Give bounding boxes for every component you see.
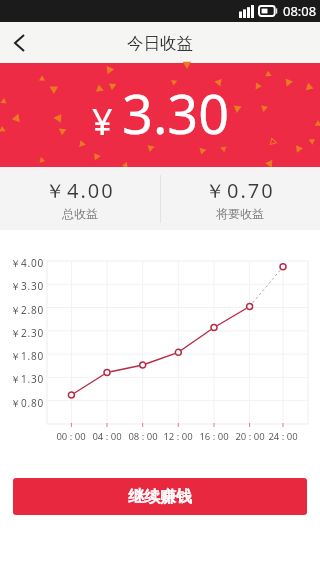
staticText: ￥0.70 xyxy=(205,177,275,204)
staticText: 总收益 xyxy=(62,206,98,221)
staticText: 24 : 00 xyxy=(263,430,303,443)
staticText: ¥ xyxy=(92,97,113,146)
button[interactable]: Back xyxy=(0,22,41,63)
staticText: 今日收益 xyxy=(127,33,193,54)
staticText: ￥4.00 xyxy=(3,256,44,270)
staticText: ￥1.30 xyxy=(3,372,44,386)
staticText: 08:08 xyxy=(283,2,317,20)
staticText: 16 : 00 xyxy=(194,430,234,443)
button[interactable]: ￥0.70 xyxy=(160,167,320,230)
staticText: 3.30 xyxy=(122,76,230,150)
staticText: 08 : 00 xyxy=(123,430,163,443)
staticText: 20 : 00 xyxy=(230,430,270,443)
staticText: 04 : 00 xyxy=(87,430,127,443)
staticText: ￥2.80 xyxy=(3,303,44,317)
staticText: ￥3.30 xyxy=(3,279,44,293)
staticText: ￥4.00 xyxy=(45,177,115,204)
staticText: 00 : 00 xyxy=(51,430,91,443)
button[interactable]: 继续赚钱 xyxy=(13,478,307,515)
button[interactable]: ￥4.00 xyxy=(0,167,160,230)
staticText: ￥1.80 xyxy=(3,349,44,363)
staticText: ￥2.30 xyxy=(3,326,44,340)
staticText: 12 : 00 xyxy=(158,430,198,443)
staticText: 将要收益 xyxy=(216,206,264,221)
staticText: 继续赚钱 xyxy=(128,487,192,507)
staticText: ￥0.80 xyxy=(3,396,44,410)
